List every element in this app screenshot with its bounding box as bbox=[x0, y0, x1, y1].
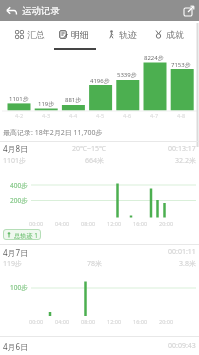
staticText: 4-6 bbox=[123, 112, 132, 119]
staticText: 4-2 bbox=[15, 112, 24, 119]
staticText: 4月8日 bbox=[3, 143, 29, 154]
staticText: 119步 bbox=[38, 100, 55, 108]
staticText: 4-3 bbox=[42, 112, 51, 119]
staticText: 4月6日 bbox=[3, 341, 29, 352]
staticText: 00:00 bbox=[29, 318, 44, 325]
button[interactable] bbox=[0, 142, 199, 166]
staticText: 12:00 bbox=[107, 220, 122, 227]
button[interactable] bbox=[0, 246, 199, 270]
staticText: 运动记录 bbox=[22, 5, 60, 17]
staticText: 最高记录: 18年2月2日 11,700步 bbox=[3, 128, 103, 138]
staticText: 00:09:43 bbox=[168, 341, 196, 351]
staticText: 881步 bbox=[65, 96, 82, 104]
staticText: 00:00 bbox=[29, 220, 44, 227]
staticText: 成就 bbox=[166, 29, 184, 40]
staticText: 200步 bbox=[10, 196, 28, 205]
staticText: 汇总 bbox=[27, 29, 45, 40]
button[interactable]: 成就 bbox=[147, 21, 191, 47]
staticText: 5339步 bbox=[117, 71, 137, 79]
staticText: 8224步 bbox=[144, 54, 164, 62]
staticText: 12:00 bbox=[107, 318, 122, 325]
staticText: 4196步 bbox=[90, 77, 110, 85]
staticText: 119步 bbox=[3, 259, 23, 269]
staticText: 100步 bbox=[10, 283, 28, 292]
staticText: 32.2米 bbox=[175, 156, 196, 166]
staticText: 16:00 bbox=[133, 220, 148, 227]
staticText: 400步 bbox=[10, 181, 28, 190]
staticText: 00:01:11 bbox=[168, 247, 196, 257]
staticText: 664米 bbox=[85, 156, 105, 166]
staticText: 08:00 bbox=[81, 220, 96, 227]
staticText: 20:00 bbox=[159, 318, 174, 325]
button[interactable]: 总轨迹 1 bbox=[3, 229, 41, 240]
staticText: 1101步 bbox=[9, 95, 29, 103]
button[interactable]: 汇总 bbox=[8, 21, 52, 47]
staticText: 3.8米 bbox=[179, 259, 196, 269]
staticText: 20℃~15℃ bbox=[72, 144, 106, 154]
staticText: 08:00 bbox=[81, 318, 96, 325]
staticText: 4-5 bbox=[96, 112, 105, 119]
staticText: 4-8 bbox=[177, 112, 186, 119]
staticText: 16:00 bbox=[133, 318, 148, 325]
staticText: 总轨迹 1 bbox=[14, 231, 38, 239]
button[interactable]: 轨迹 bbox=[100, 21, 144, 47]
staticText: 04:00 bbox=[55, 318, 70, 325]
button[interactable] bbox=[0, 0, 21, 21]
staticText: 4-7 bbox=[150, 112, 159, 119]
staticText: 4月7日 bbox=[3, 247, 29, 258]
staticText: 7153步 bbox=[171, 61, 191, 69]
button[interactable] bbox=[178, 0, 199, 21]
staticText: 明细 bbox=[71, 29, 89, 40]
button[interactable]: 明细 bbox=[52, 21, 96, 47]
button[interactable] bbox=[0, 338, 199, 355]
staticText: 00:13:17 bbox=[168, 144, 196, 154]
staticText: 20:00 bbox=[159, 220, 174, 227]
staticText: 轨迹 bbox=[119, 29, 137, 40]
staticText: 1101步 bbox=[3, 156, 27, 166]
staticText: 78米 bbox=[87, 259, 103, 269]
staticText: 4-4 bbox=[69, 112, 78, 119]
staticText: 04:00 bbox=[55, 220, 70, 227]
